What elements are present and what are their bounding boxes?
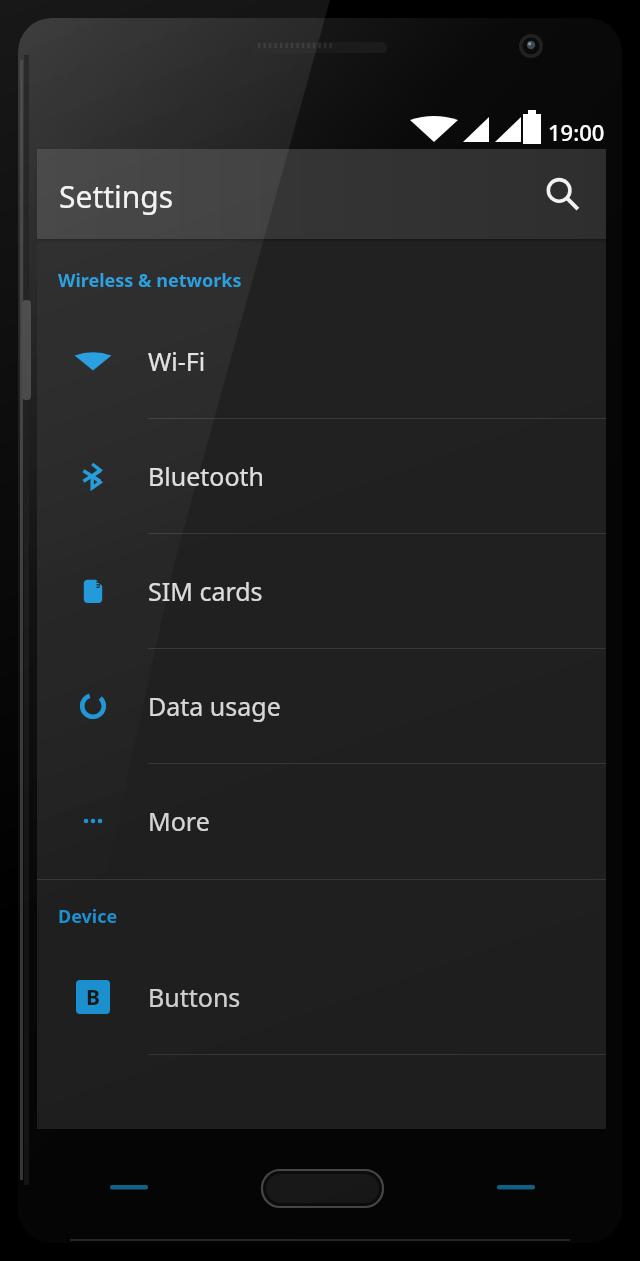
button[interactable]: SIM cards <box>37 534 606 648</box>
button[interactable]: Search <box>530 162 594 226</box>
staticText: Device <box>58 904 118 929</box>
button[interactable]: Bluetooth <box>37 419 606 533</box>
staticText: Wireless & networks <box>58 268 242 293</box>
button[interactable]: More <box>37 764 606 878</box>
button[interactable]: Wi-Fi <box>37 304 606 418</box>
button[interactable]: B <box>37 940 606 1054</box>
staticText: Data usage <box>148 689 281 723</box>
staticText: SIM cards <box>148 574 263 608</box>
staticText: Wi-Fi <box>148 344 206 378</box>
staticText: Settings <box>59 176 174 217</box>
staticText: Buttons <box>148 980 241 1014</box>
button[interactable]: Data usage <box>37 649 606 763</box>
staticText: B <box>86 983 100 1012</box>
staticText: More <box>148 804 210 838</box>
staticText: 19:00 <box>548 117 605 147</box>
staticText: Bluetooth <box>148 459 265 493</box>
